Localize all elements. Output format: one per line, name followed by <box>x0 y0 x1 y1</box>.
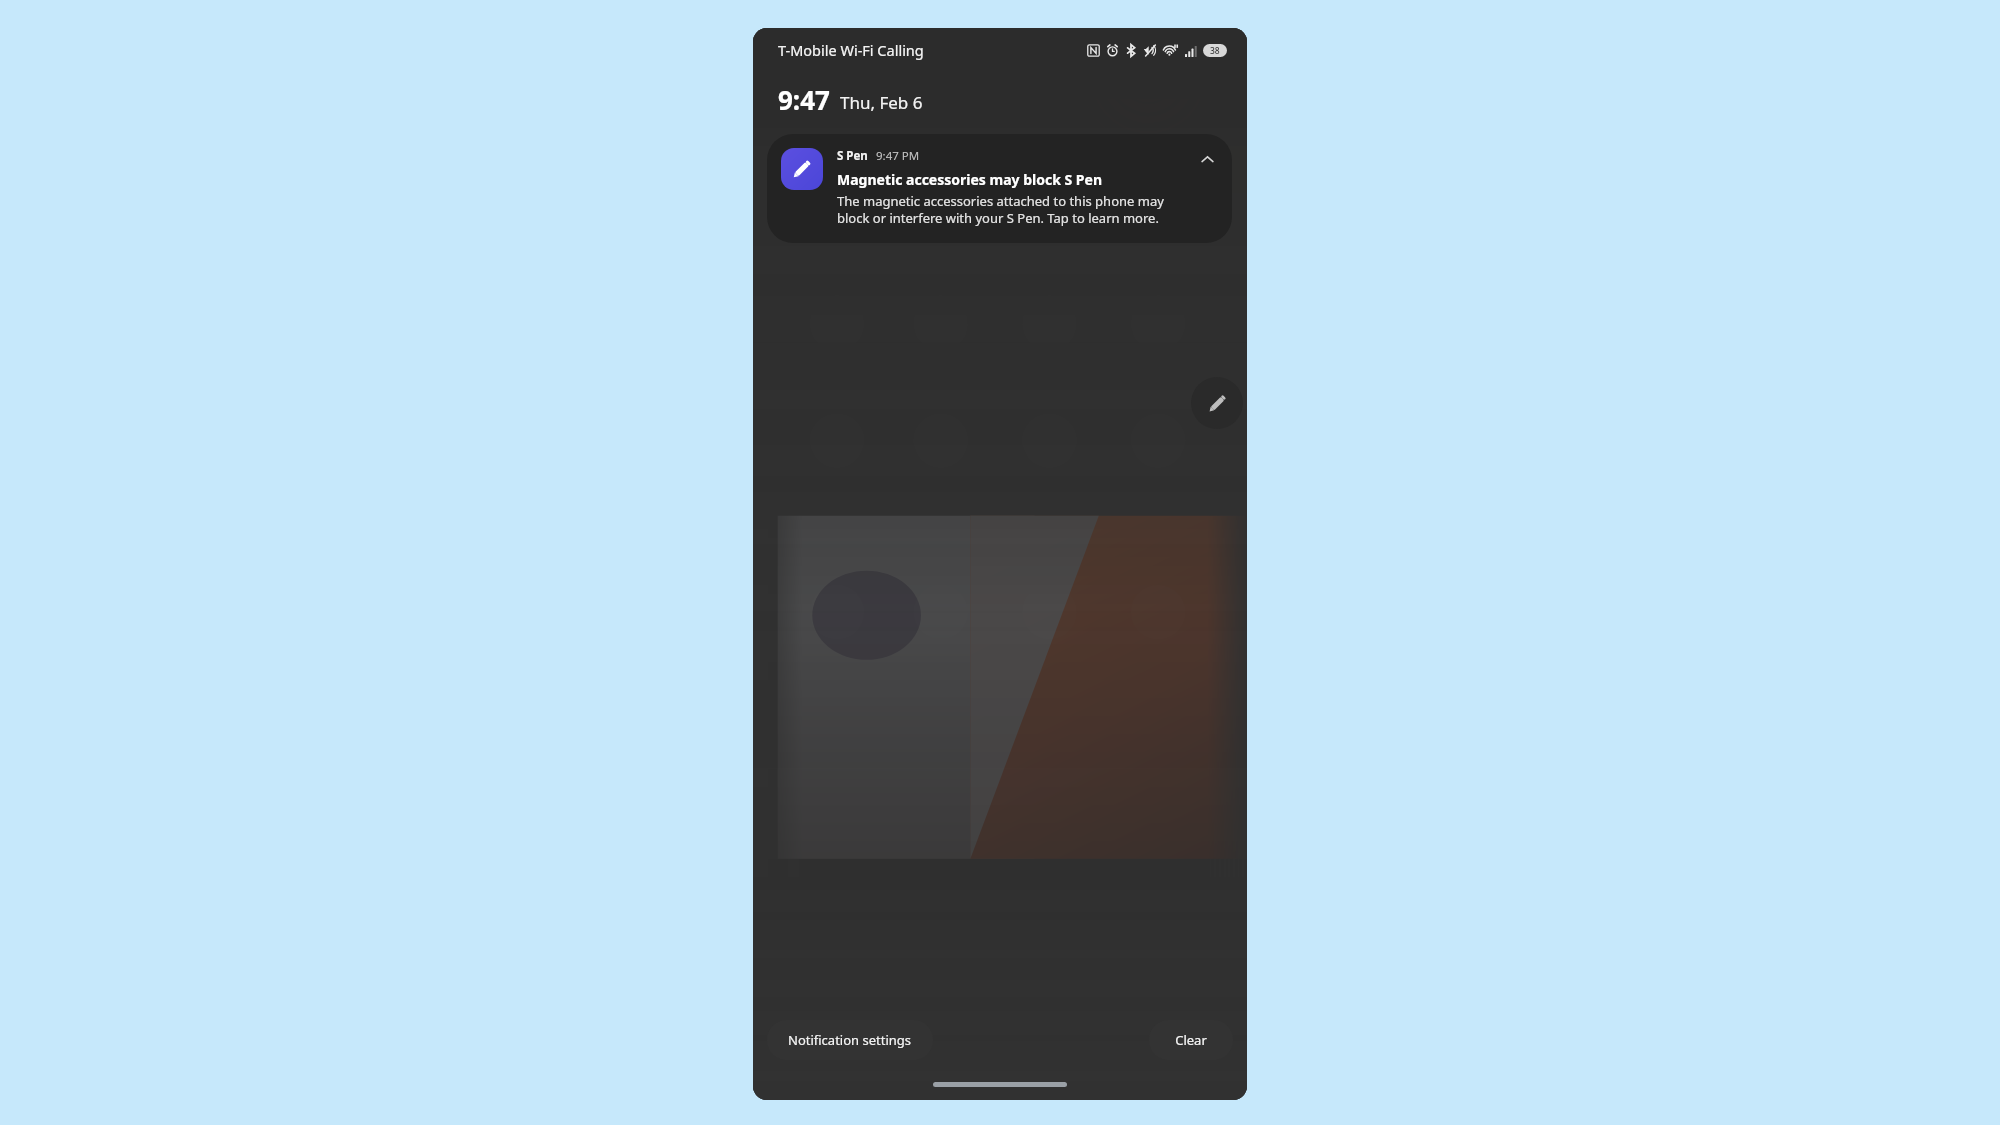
staticText: Notification settings <box>788 1031 912 1049</box>
staticText: 38 <box>1210 45 1220 57</box>
staticText: 9:47 PM <box>876 148 920 164</box>
staticText: 9:47 <box>778 82 830 117</box>
staticText: Clear <box>1175 1031 1207 1049</box>
button[interactable]: S Pen <box>767 134 1232 243</box>
staticText: T-Mobile Wi-Fi Calling <box>778 40 924 60</box>
button[interactable]: Collapse notification <box>1196 148 1218 170</box>
staticText: Magnetic accessories may block S Pen <box>837 170 1102 189</box>
button[interactable]: Clear <box>1149 1020 1233 1060</box>
staticText: The magnetic accessories attached to thi… <box>837 192 1188 227</box>
staticText: Thu, Feb 6 <box>840 91 923 114</box>
button[interactable]: Notification settings <box>767 1020 933 1060</box>
staticText: S Pen <box>837 148 868 164</box>
button[interactable]: S Pen menu <box>1191 377 1243 429</box>
